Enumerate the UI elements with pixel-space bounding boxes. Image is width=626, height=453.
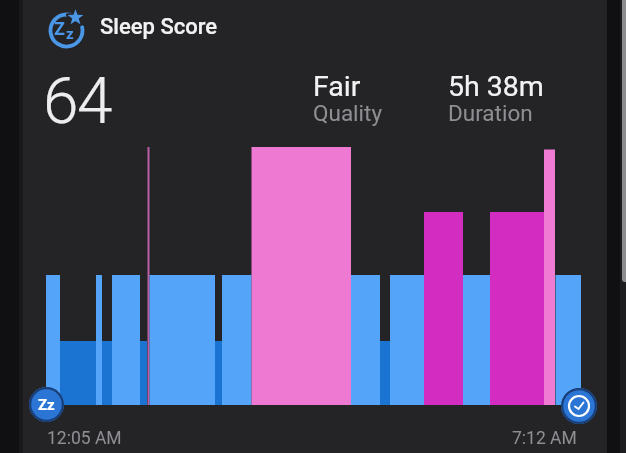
button[interactable]: [561, 388, 597, 424]
staticText: 12:05 AM: [47, 428, 122, 449]
staticText: 64: [43, 64, 111, 139]
staticText: Fair: [313, 70, 361, 103]
staticText: Quality: [313, 100, 383, 126]
staticText: 7:12 AM: [512, 428, 577, 449]
staticText: Zz: [38, 396, 55, 414]
button[interactable]: Zz: [29, 387, 64, 422]
staticText: z: [66, 25, 74, 43]
staticText: Z: [54, 18, 65, 39]
button[interactable]: [46, 8, 216, 54]
staticText: Sleep Score: [100, 14, 218, 40]
staticText: 5h 38m: [448, 70, 544, 103]
staticText: Duration: [448, 100, 533, 126]
